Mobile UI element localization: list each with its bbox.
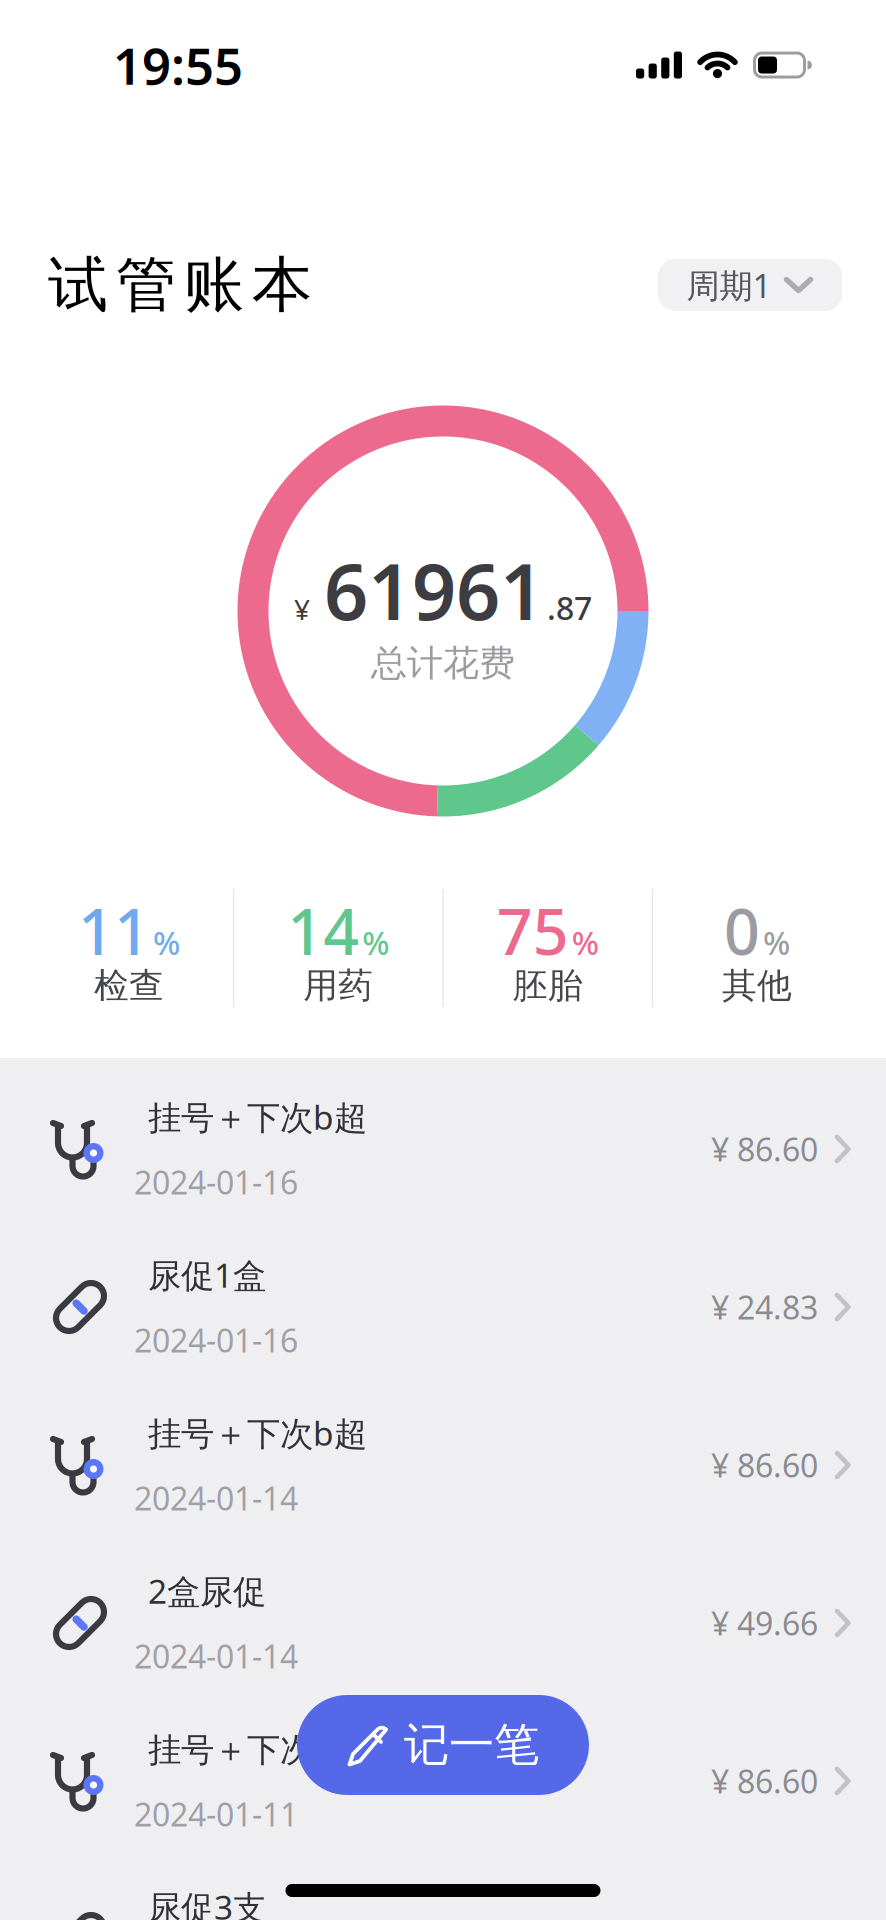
staticText: 2024-01-16: [134, 1319, 298, 1361]
staticText: %: [763, 921, 790, 964]
staticText: 2024-01-14: [134, 1477, 298, 1519]
staticText: 用药: [303, 964, 373, 1007]
staticText: .87: [547, 586, 592, 629]
staticText: 2盒尿促: [148, 1569, 266, 1613]
staticText: 总计花费: [371, 641, 515, 685]
staticText: ¥ 86.60: [711, 1760, 818, 1802]
staticText: 19:55: [113, 31, 243, 99]
button[interactable]: 挂号＋下次b超: [0, 1070, 886, 1228]
staticText: 0: [724, 889, 760, 972]
staticText: 14: [287, 889, 359, 972]
button[interactable]: 尿促1盒: [0, 1228, 886, 1386]
staticText: ¥: [294, 590, 310, 628]
staticText: %: [362, 921, 389, 964]
staticText: 2024-01-16: [134, 1161, 298, 1203]
staticText: 挂号＋下次b超: [148, 1411, 367, 1455]
staticText: 挂号＋下次b超: [148, 1727, 367, 1771]
staticText: 2024-01-11: [134, 1793, 298, 1835]
button[interactable]: 记一笔: [297, 1695, 589, 1795]
staticText: 尿促1盒: [148, 1253, 266, 1297]
staticText: 检查: [94, 964, 164, 1007]
staticText: ¥ 24.83: [711, 1286, 818, 1328]
staticText: 11: [78, 889, 150, 972]
staticText: 试管账本: [48, 248, 312, 322]
staticText: 周期1: [686, 263, 771, 307]
staticText: ¥ 86.60: [711, 1128, 818, 1170]
staticText: 记一笔: [404, 1717, 539, 1773]
staticText: ¥ 86.60: [711, 1444, 818, 1486]
button[interactable]: 挂号＋下次b超: [0, 1702, 886, 1860]
staticText: 尿促3支: [148, 1885, 266, 1920]
staticText: 挂号＋下次b超: [148, 1095, 367, 1139]
button[interactable]: 尿促3支: [0, 1860, 886, 1920]
button[interactable]: 挂号＋下次b超: [0, 1386, 886, 1544]
staticText: 61961: [324, 538, 544, 641]
staticText: 胚胎: [513, 964, 583, 1007]
staticText: ¥ 49.66: [711, 1602, 818, 1644]
staticText: 其他: [722, 964, 792, 1007]
staticText: %: [572, 921, 599, 964]
staticText: %: [153, 921, 180, 964]
staticText: 75: [497, 889, 569, 972]
button[interactable]: 周期1: [658, 259, 842, 311]
button[interactable]: 2盒尿促: [0, 1544, 886, 1702]
staticText: 2024-01-14: [134, 1635, 298, 1677]
